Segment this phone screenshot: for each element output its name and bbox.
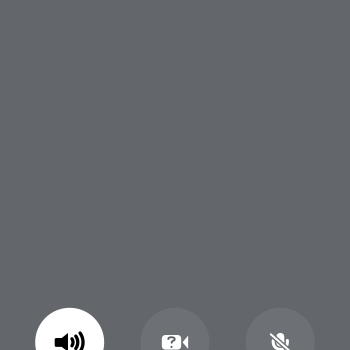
button[interactable]: Speaker <box>35 308 104 350</box>
button[interactable]: Camera <box>140 308 209 350</box>
button[interactable]: Mute <box>246 308 315 350</box>
